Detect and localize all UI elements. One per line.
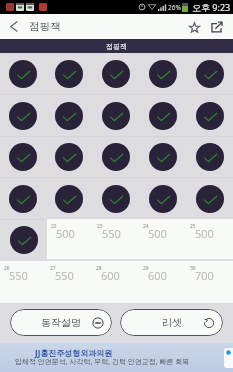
button[interactable]: 23 <box>93 219 139 259</box>
button[interactable]: Completed set <box>102 143 130 171</box>
button[interactable]: Advertisement <box>0 343 233 372</box>
staticText: 26% <box>168 3 181 12</box>
button[interactable]: Completed set <box>55 60 83 88</box>
staticText: 550 <box>9 268 28 283</box>
staticText: JJ홍진주성형외과의원 <box>35 347 113 358</box>
staticText: 500 <box>148 226 167 241</box>
staticText: 오후 9:23 <box>192 1 231 13</box>
button[interactable]: Completed set <box>196 185 224 213</box>
staticText: 550 <box>102 226 121 241</box>
staticText: 700 <box>195 268 214 283</box>
button[interactable]: Completed set <box>55 143 83 171</box>
button[interactable]: Completed set <box>196 60 224 88</box>
staticText: 600 <box>148 268 167 283</box>
staticText: 26 <box>4 265 10 272</box>
staticText: 29 <box>143 265 149 272</box>
button[interactable]: Completed set <box>55 185 83 213</box>
button[interactable]: Completed set <box>9 60 37 88</box>
button[interactable]: 27 <box>46 261 92 303</box>
button[interactable]: Completed set <box>55 102 83 130</box>
button[interactable]: 리셋 <box>120 309 223 336</box>
button[interactable]: Completed set <box>196 143 224 171</box>
staticText: 점핑잭 <box>29 20 61 33</box>
staticText: 점핑잭 <box>106 42 127 51</box>
button[interactable]: Completed set <box>149 60 177 88</box>
button[interactable]: 동작설명 <box>10 309 112 336</box>
button[interactable]: Share <box>207 17 227 37</box>
button[interactable]: Completed set <box>149 185 177 213</box>
button[interactable]: Completed set <box>9 102 37 130</box>
button[interactable]: 29 <box>139 261 186 303</box>
button[interactable]: 30 <box>186 261 233 303</box>
staticText: 24 <box>143 223 149 230</box>
staticText: 500 <box>56 226 75 241</box>
button[interactable]: 25 <box>186 219 233 259</box>
staticText: 600 <box>101 268 120 283</box>
staticText: 리셋 <box>162 316 182 329</box>
button[interactable]: Completed set <box>9 143 37 171</box>
button[interactable]: Completed set <box>196 102 224 130</box>
button[interactable]: Completed set <box>102 185 130 213</box>
button[interactable]: Completed set <box>149 143 177 171</box>
staticText: 500 <box>195 226 214 241</box>
button[interactable]: 24 <box>139 219 186 259</box>
button[interactable]: 22 <box>47 219 93 259</box>
button[interactable]: Completed set <box>149 102 177 130</box>
button[interactable]: Completed set <box>102 102 130 130</box>
button[interactable]: Completed set <box>9 185 37 213</box>
button[interactable]: 26 <box>0 261 46 303</box>
staticText: 23 <box>97 223 103 230</box>
button[interactable]: Back <box>0 14 27 39</box>
staticText: 입체적 안면분석, 사각턱, 무턱, 긴턱 안면교정, 빠른 회복 <box>15 357 190 367</box>
button[interactable]: Completed set <box>10 226 38 254</box>
staticText: 22 <box>51 223 57 230</box>
staticText: 25 <box>190 223 196 230</box>
button[interactable]: Completed set <box>102 60 130 88</box>
button[interactable]: 28 <box>92 261 139 303</box>
staticText: 동작설명 <box>41 316 81 329</box>
staticText: 30 <box>190 265 196 272</box>
staticText: 27 <box>50 265 56 272</box>
staticText: 28 <box>96 265 102 272</box>
button[interactable]: Favorite <box>184 17 204 37</box>
staticText: 550 <box>55 268 74 283</box>
